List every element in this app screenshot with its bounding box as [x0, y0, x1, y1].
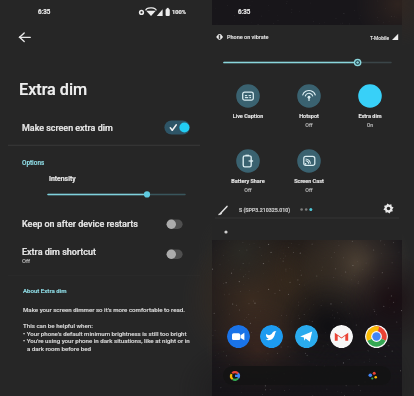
button[interactable]: Twitter — [260, 325, 283, 348]
button[interactable]: Live Caption — [218, 84, 278, 136]
staticText: 100% — [172, 9, 198, 16]
button[interactable]: Settings — [381, 201, 396, 216]
staticText: T-Mobile — [359, 35, 389, 41]
button[interactable]: Screen Cast — [279, 149, 339, 201]
button[interactable]: Extra dim shortcut — [0, 244, 209, 268]
staticText: Live Caption — [218, 113, 278, 119]
staticText: Make your screen dimmer so it's more com… — [23, 306, 232, 313]
button[interactable]: Gmail — [330, 325, 353, 348]
staticText: Off — [218, 187, 278, 193]
staticText: Off — [279, 187, 339, 193]
button[interactable]: Edit tiles — [216, 203, 230, 217]
staticText: • You're using your phone in dark situat… — [23, 337, 232, 344]
button[interactable]: Search — [223, 366, 391, 385]
staticText: 6:35 — [38, 8, 68, 15]
staticText: Keep on after device restarts — [22, 219, 182, 230]
staticText: Off — [22, 258, 62, 265]
button[interactable]: Back — [13, 26, 36, 49]
staticText: Extra dim — [340, 113, 400, 119]
staticText: Intensity — [49, 175, 109, 183]
button[interactable]: Extra dim — [340, 84, 400, 136]
staticText: On — [340, 122, 400, 128]
staticText: S (SPP3.210325.010) — [239, 207, 319, 213]
button[interactable]: Hotspot — [279, 84, 339, 136]
staticText: a dark room before bed — [27, 345, 236, 352]
button[interactable]: Make screen extra dim — [0, 116, 209, 142]
staticText: 6:35 — [238, 8, 268, 15]
button[interactable]: Chrome — [365, 325, 388, 348]
staticText: This can be helpful when: — [23, 322, 232, 329]
staticText: Battery Share — [218, 178, 278, 184]
button[interactable]: Meet — [227, 325, 250, 348]
staticText: Screen Cast — [279, 178, 339, 184]
button[interactable]: Keep on after device restarts — [0, 214, 209, 236]
staticText: Extra dim — [19, 80, 179, 99]
staticText: • Your phone's default minimum brightnes… — [23, 330, 232, 337]
staticText: Hotspot — [279, 113, 339, 119]
staticText: Extra dim shortcut — [22, 247, 172, 258]
staticText: Off — [279, 122, 339, 128]
button[interactable]: Battery Share — [218, 149, 278, 201]
staticText: Make screen extra dim — [22, 123, 172, 133]
staticText: Options — [22, 159, 82, 167]
button[interactable]: Telegram — [295, 325, 318, 348]
staticText: Phone on vibrate — [227, 34, 307, 40]
staticText: About Extra dim — [23, 287, 103, 294]
